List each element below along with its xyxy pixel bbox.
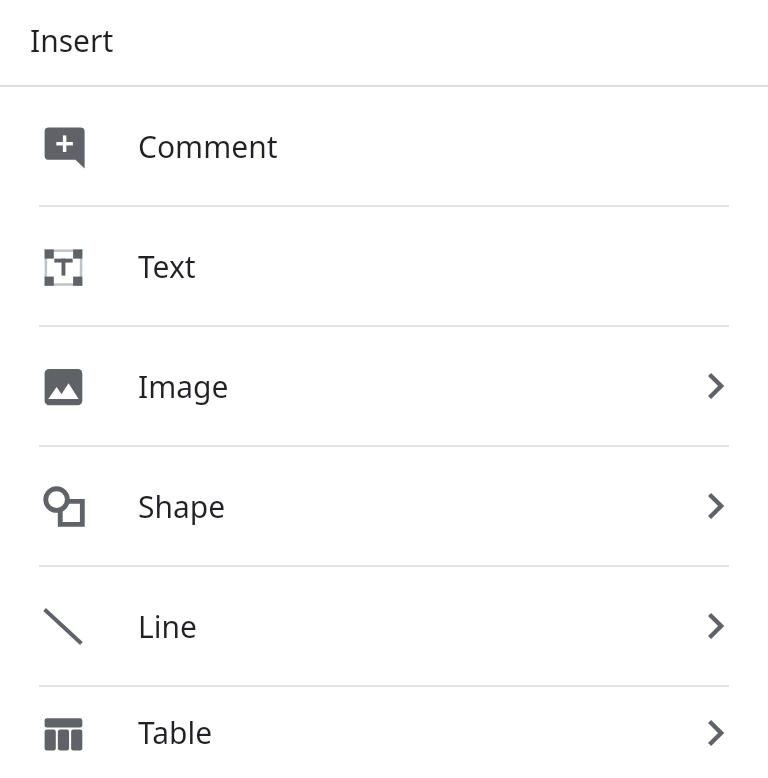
button[interactable]: Image	[0, 327, 768, 445]
staticText: Image	[138, 366, 685, 407]
button[interactable]: Shape	[0, 447, 768, 565]
other: Image options	[685, 356, 745, 416]
button[interactable]: Text	[0, 207, 768, 325]
staticText: Shape	[138, 486, 685, 527]
staticText: Comment	[138, 126, 685, 167]
button[interactable]: Comment	[0, 87, 768, 205]
staticText: Table	[138, 712, 685, 753]
staticText: Line	[138, 606, 685, 647]
other: Shape options	[685, 476, 745, 536]
staticText: Text	[138, 246, 685, 287]
button[interactable]: Line	[0, 567, 768, 685]
other: Line options	[685, 596, 745, 656]
button[interactable]: Table	[0, 687, 768, 778]
other: Table options	[685, 703, 745, 763]
staticText: Insert	[30, 20, 114, 61]
